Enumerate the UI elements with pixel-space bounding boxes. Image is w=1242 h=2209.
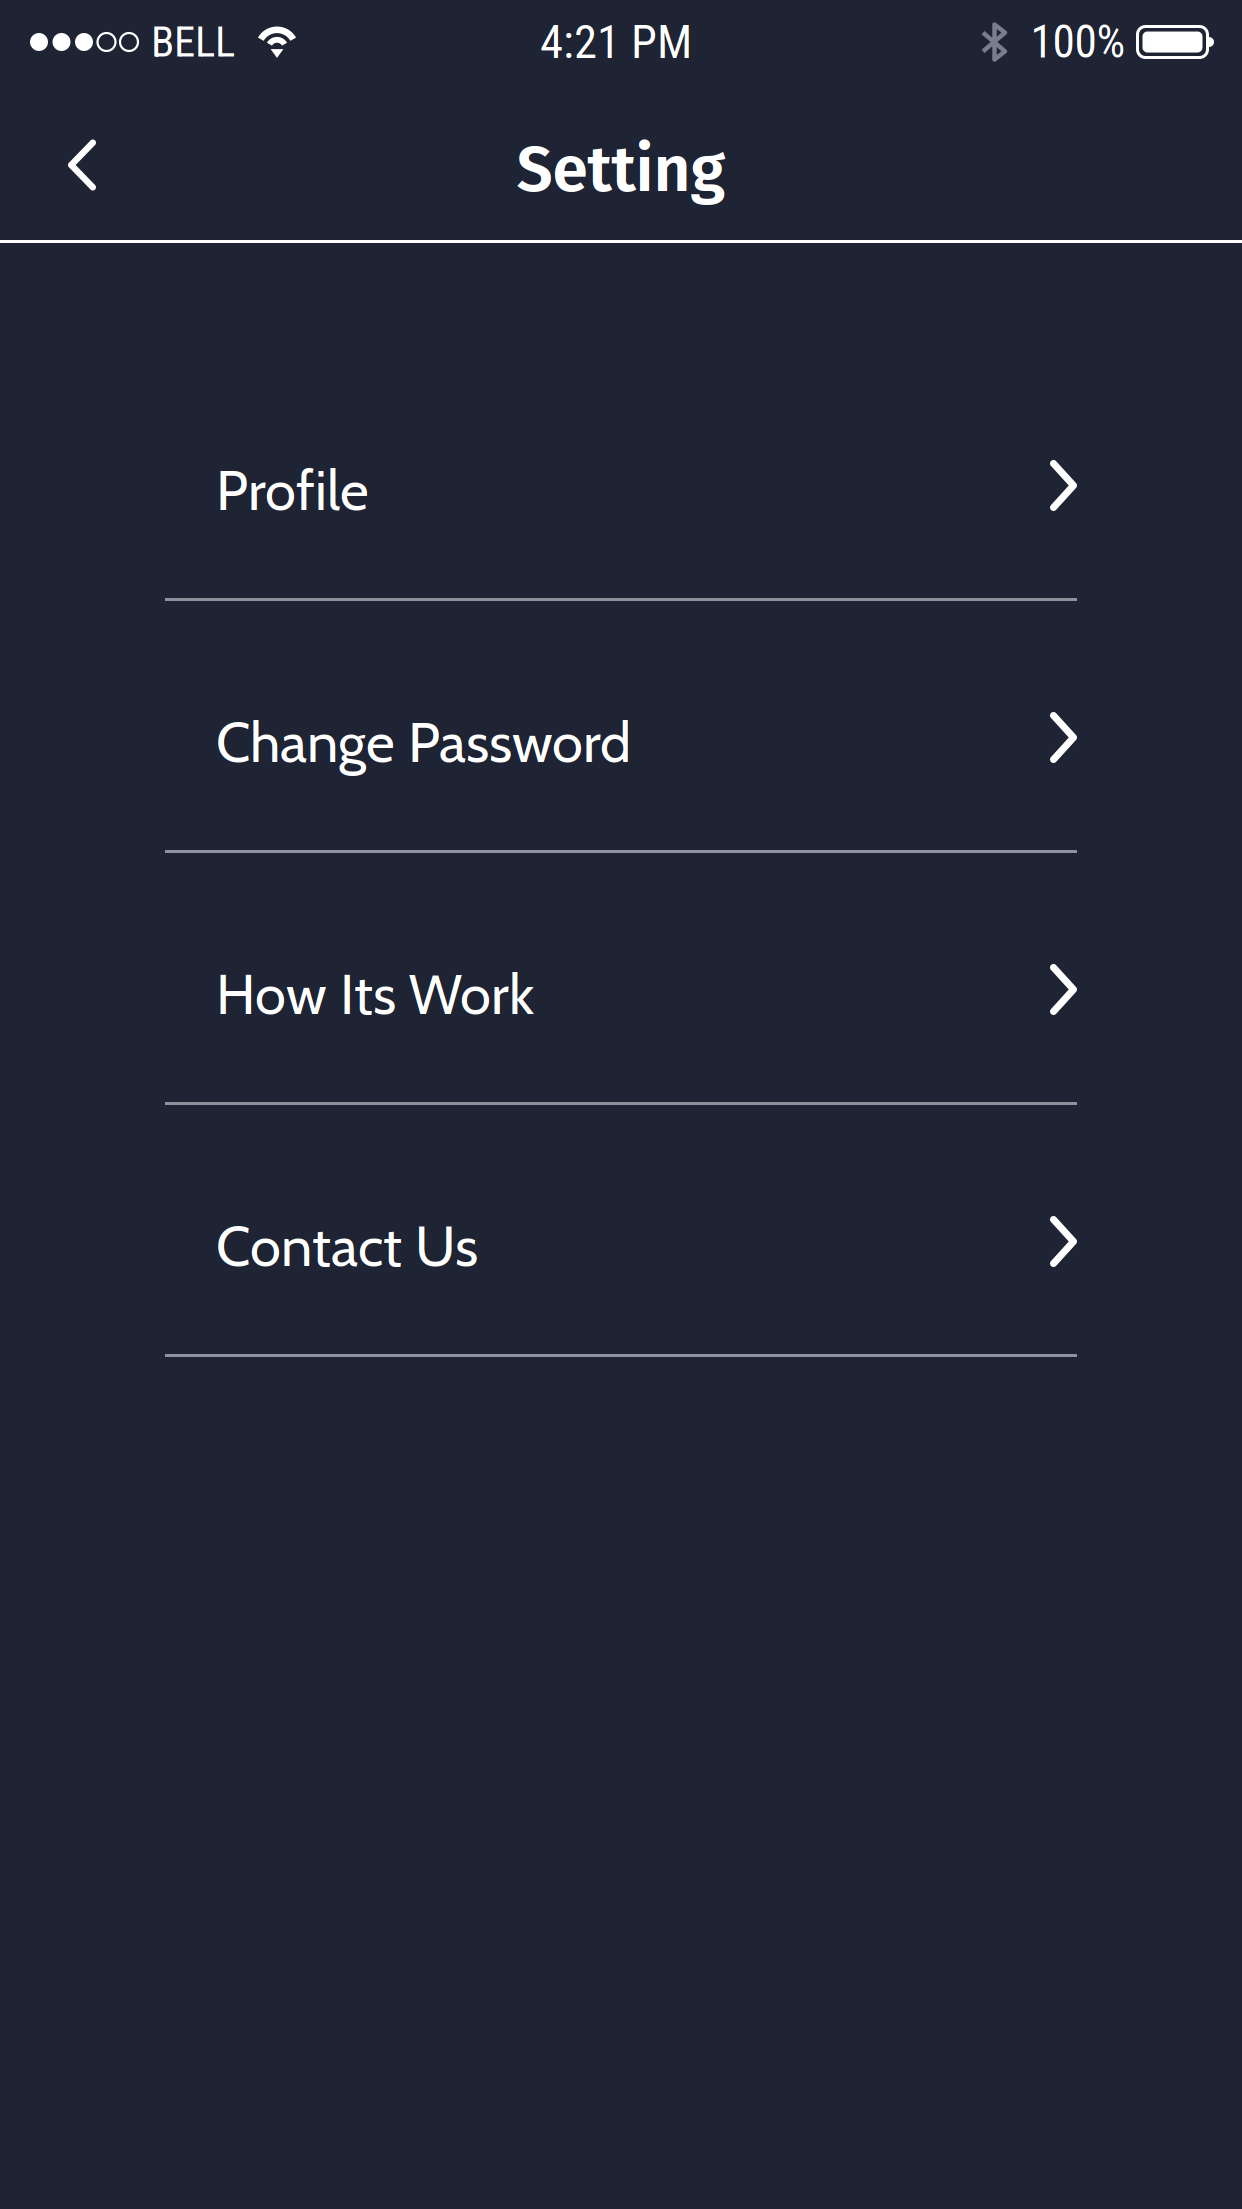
staticText: 4:21 PM: [540, 15, 692, 69]
staticText: How Its Work: [216, 960, 534, 1028]
staticText: Profile: [216, 456, 369, 524]
staticText: Setting: [516, 131, 725, 208]
button[interactable]: Profile: [165, 349, 1077, 601]
staticText: Change Password: [216, 708, 631, 776]
staticText: Contact Us: [216, 1212, 478, 1280]
button[interactable]: How Its Work: [165, 853, 1077, 1105]
button[interactable]: Back: [0, 90, 135, 240]
button[interactable]: Change Password: [165, 601, 1077, 853]
staticText: 100%: [1030, 15, 1125, 68]
staticText: BELL: [151, 17, 235, 67]
button[interactable]: Contact Us: [165, 1105, 1077, 1357]
